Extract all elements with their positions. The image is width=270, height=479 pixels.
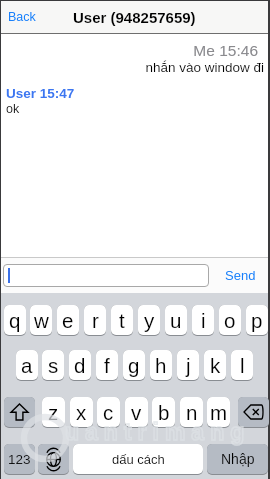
staticText: User 15:47 [6,86,75,101]
staticText: t [119,309,125,332]
button[interactable]: x [70,397,93,428]
staticText: w [34,309,49,332]
button[interactable]: t [111,305,133,336]
staticText: ok [6,102,20,116]
staticText: c [103,401,114,424]
staticText: x [76,401,87,424]
staticText: m [210,401,228,424]
button[interactable]: Back [8,10,36,24]
staticText: Back [8,10,36,24]
button[interactable]: n [180,397,203,428]
button[interactable]: z [42,397,65,428]
staticText: o [224,309,236,332]
staticText: r [92,309,99,332]
button[interactable]: q [4,305,26,336]
staticText: y [144,309,155,332]
button[interactable] [38,444,69,475]
button[interactable]: f [96,350,118,381]
staticText: a [21,354,33,377]
button[interactable]: m [207,397,230,428]
button[interactable]: b [152,397,175,428]
staticText: v [131,401,142,424]
staticText: d [74,354,86,377]
staticText: q [9,309,21,332]
button[interactable] [4,397,35,428]
staticText: e [62,309,74,332]
button[interactable] [3,264,209,287]
button[interactable]: w [30,305,52,336]
button[interactable]: d [69,350,91,381]
button[interactable]: k [204,350,226,381]
button[interactable]: h [150,350,172,381]
button[interactable]: s [42,350,64,381]
staticText: Me 15:46 [1,42,258,59]
button[interactable]: dấu cách [73,444,203,475]
staticText: Nhập [221,451,255,467]
button[interactable]: j [177,350,199,381]
button[interactable]: c [97,397,120,428]
staticText: k [210,354,221,377]
staticText: User (948257659) [73,9,196,26]
staticText: 123 [8,452,31,467]
staticText: i [201,309,206,332]
button[interactable]: Nhập [207,444,268,475]
button[interactable]: i [192,305,214,336]
button[interactable]: v [125,397,148,428]
staticText: f [104,354,110,377]
button[interactable]: Send [225,268,256,283]
staticText: l [240,354,245,377]
button[interactable]: g [123,350,145,381]
button[interactable]: l [231,350,253,381]
staticText: h [155,354,167,377]
staticText: dấu cách [112,452,165,467]
button[interactable]: r [84,305,106,336]
staticText: u [170,309,182,332]
staticText: j [186,354,191,377]
button[interactable]: o [219,305,241,336]
staticText: nhắn vào window đi [1,60,264,75]
staticText: uantrimang [65,419,251,445]
staticText: n [186,401,198,424]
button[interactable]: y [138,305,160,336]
staticText: b [158,401,170,424]
button[interactable] [238,397,269,428]
button[interactable]: u [165,305,187,336]
staticText: z [48,401,59,424]
staticText: s [48,354,59,377]
staticText: g [128,354,140,377]
button[interactable]: p [246,305,268,336]
staticText: Send [225,268,256,283]
staticText: p [251,309,263,332]
button[interactable]: e [57,305,79,336]
button[interactable]: a [16,350,38,381]
button[interactable]: 123 [4,444,35,475]
